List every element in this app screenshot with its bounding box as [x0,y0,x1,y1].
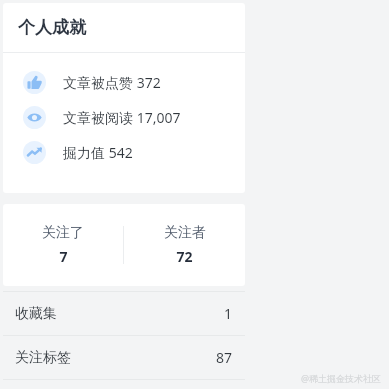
staticText: 7 [59,247,68,266]
button[interactable]: 关注者 [124,204,245,286]
staticText: 1 [224,304,233,323]
button[interactable]: Views [3,100,245,135]
staticText: 文章被点赞 372 [63,73,161,92]
staticText: 收藏集 [15,305,57,323]
staticText: 87 [216,348,233,367]
button[interactable]: 收藏集 [3,292,245,335]
staticText: 关注标签 [15,349,71,367]
staticText: 关注了 [42,224,84,242]
staticText: 文章被阅读 17,007 [63,108,181,127]
staticText: @稀土掘金技术社区 [301,372,382,384]
other: Power value [23,141,46,164]
staticText: 关注者 [164,224,206,242]
button[interactable]: Power value [3,135,245,170]
other: Likes [23,71,46,94]
other: Views [23,106,46,129]
button[interactable]: 关注标签 [3,336,245,379]
button[interactable]: 关注了 [3,204,123,286]
staticText: 72 [176,247,193,266]
staticText: 个人成就 [18,17,86,38]
button[interactable]: Likes [3,65,245,100]
staticText: 掘力值 542 [63,143,133,162]
